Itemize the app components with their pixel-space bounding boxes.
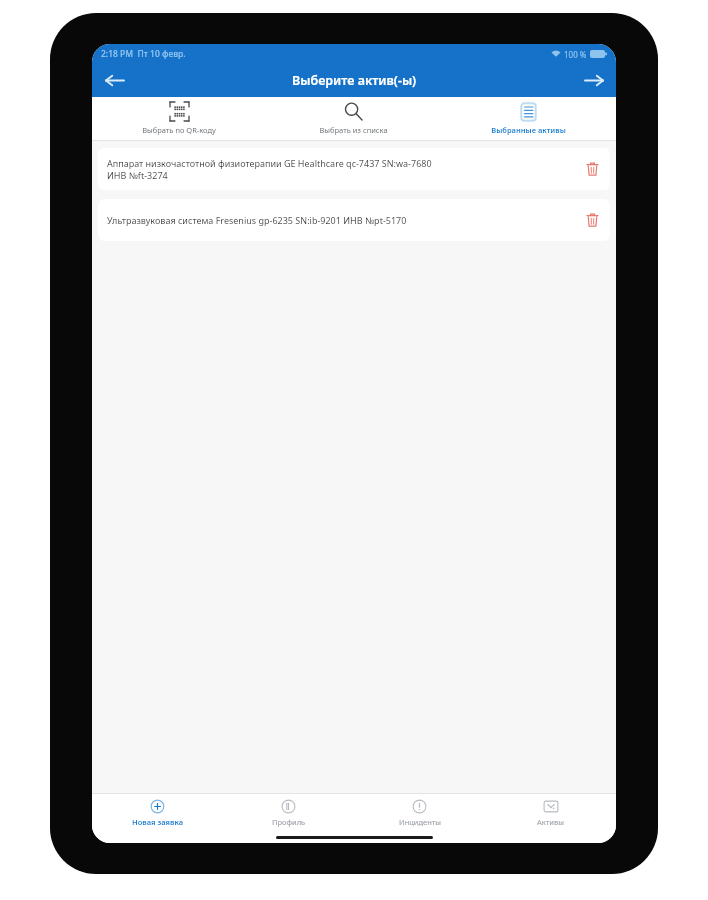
staticText: Ультразвуковая система Fresenius gp-6235… — [107, 214, 407, 226]
button[interactable]: Инциденты — [354, 794, 485, 832]
staticText: ИНВ №ft-3274 — [107, 169, 168, 181]
button[interactable]: Удалить — [580, 157, 604, 181]
staticText: 2:18 PM Пт 10 февр. — [101, 48, 186, 60]
button[interactable]: Новая заявка — [92, 794, 223, 832]
staticText: Выберите актив(-ы) — [292, 72, 417, 89]
button[interactable]: Аппарат низкочастотной физиотерапии GE H… — [98, 148, 610, 190]
staticText: Выбранные активы — [491, 125, 566, 135]
button[interactable]: Далее — [576, 64, 612, 97]
staticText: Профиль — [272, 817, 306, 827]
staticText: Активы — [537, 817, 564, 827]
button[interactable]: Выбрать из списка — [266, 97, 441, 140]
staticText: 100 % — [564, 49, 587, 60]
button[interactable]: Активы — [485, 794, 616, 832]
button[interactable]: Ультразвуковая система Fresenius gp-6235… — [98, 199, 610, 241]
button[interactable]: Назад — [96, 64, 132, 97]
staticText: Инциденты — [399, 817, 441, 827]
staticText: Новая заявка — [132, 817, 183, 827]
button[interactable]: Выбрать по QR-коду — [92, 97, 266, 140]
staticText: Выбрать по QR-коду — [142, 125, 216, 135]
button[interactable]: Выбранные активы — [441, 97, 616, 140]
button[interactable]: Удалить — [580, 208, 604, 232]
button[interactable]: Профиль — [223, 794, 354, 832]
staticText: Аппарат низкочастотной физиотерапии GE H… — [107, 157, 432, 169]
staticText: Выбрать из списка — [319, 125, 388, 135]
